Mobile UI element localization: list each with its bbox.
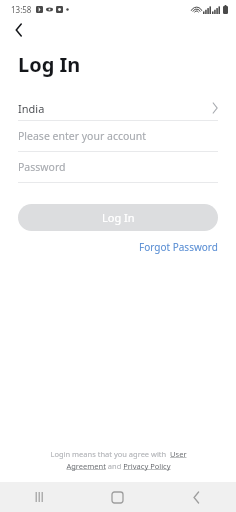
button[interactable]: Home: [78, 482, 157, 512]
button[interactable]: Recents: [0, 482, 78, 512]
staticText: Password: [18, 160, 66, 174]
button[interactable]: Log In: [18, 204, 218, 231]
button[interactable]: Password: [0, 152, 236, 182]
button[interactable]: Back: [0, 18, 38, 42]
staticText: Log In: [102, 210, 135, 225]
staticText: Forgot Password: [139, 240, 218, 254]
staticText: Log In: [18, 51, 81, 78]
button[interactable]: Please enter your account: [0, 121, 236, 151]
button[interactable]: India: [0, 96, 236, 120]
button[interactable]: Back: [157, 482, 236, 512]
staticText: Please enter your account: [18, 129, 147, 143]
button[interactable]: Forgot Password: [139, 240, 218, 254]
staticText: Login means that you agree with User: [50, 449, 187, 459]
staticText: India: [18, 101, 45, 116]
staticText: Agreement and Privacy Policy: [66, 461, 171, 471]
button[interactable]: Login means that you agree with User: [0, 449, 236, 471]
staticText: 13:58: [11, 4, 32, 15]
